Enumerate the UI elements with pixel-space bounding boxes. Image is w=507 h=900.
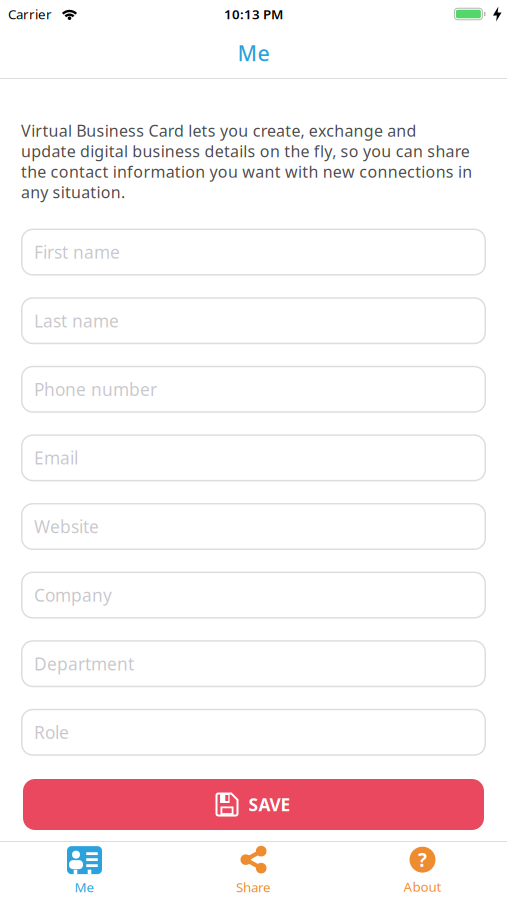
button[interactable]: Department bbox=[21, 640, 486, 687]
staticText: Role bbox=[34, 721, 69, 744]
button[interactable]: Company bbox=[21, 572, 486, 619]
staticText: Last name bbox=[34, 309, 119, 332]
button[interactable]: SAVE bbox=[23, 779, 484, 830]
staticText: Company bbox=[34, 584, 112, 607]
staticText: any situation. bbox=[21, 181, 125, 202]
staticText: ? bbox=[418, 847, 427, 872]
staticText: About bbox=[403, 878, 441, 895]
staticText: Email bbox=[34, 446, 78, 469]
button[interactable]: Last name bbox=[21, 297, 486, 344]
button[interactable]: First name bbox=[21, 229, 486, 276]
staticText: the contact information you want with ne… bbox=[21, 161, 472, 182]
button[interactable]: ? bbox=[338, 842, 507, 900]
button[interactable]: Share bbox=[169, 842, 338, 900]
staticText: Me bbox=[74, 878, 94, 896]
staticText: SAVE bbox=[248, 793, 290, 816]
button[interactable]: Website bbox=[21, 503, 486, 550]
staticText: Website bbox=[34, 515, 99, 538]
staticText: Me bbox=[237, 39, 269, 67]
staticText: Share bbox=[236, 878, 271, 896]
staticText: Carrier bbox=[8, 5, 52, 23]
staticText: 10:13 PM bbox=[224, 5, 283, 23]
button[interactable]: Me bbox=[0, 842, 169, 900]
staticText: Phone number bbox=[34, 378, 157, 401]
staticText: Department bbox=[34, 652, 134, 675]
staticText: update digital business details on the f… bbox=[21, 140, 470, 162]
staticText: Virtual Business Card lets you create, e… bbox=[21, 120, 416, 141]
staticText: First name bbox=[34, 241, 120, 264]
button[interactable]: Role bbox=[21, 709, 486, 756]
button[interactable]: Email bbox=[21, 434, 486, 481]
button[interactable]: Phone number bbox=[21, 366, 486, 413]
